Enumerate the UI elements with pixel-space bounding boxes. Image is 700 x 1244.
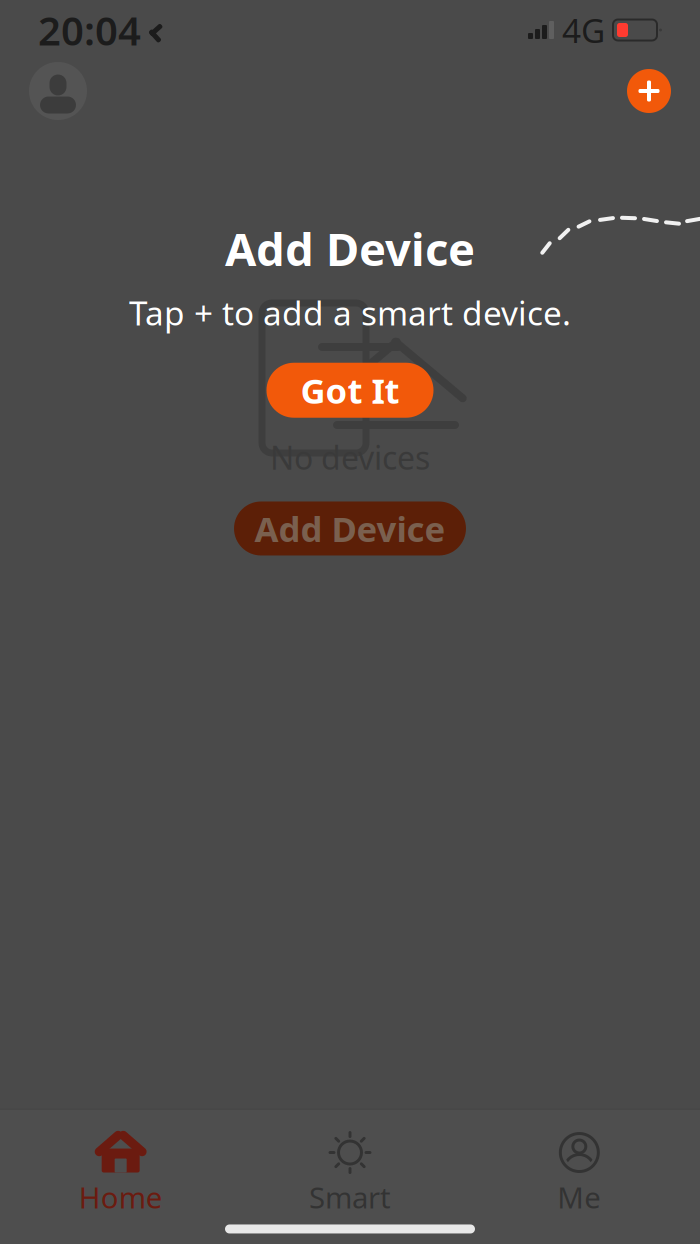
button[interactable]: Home: [6, 1123, 235, 1224]
button[interactable]: Add device: [627, 69, 671, 113]
staticText: Me: [557, 1177, 601, 1216]
staticText: Smart: [309, 1177, 391, 1216]
button[interactable]: Profile: [29, 62, 87, 120]
button[interactable]: Me: [465, 1123, 694, 1224]
button[interactable]: Smart: [235, 1123, 465, 1224]
staticText: 20:04: [38, 3, 141, 56]
staticText: Add Device: [225, 218, 475, 278]
staticText: Got It: [300, 367, 399, 413]
button[interactable]: Got It: [266, 363, 433, 418]
staticText: No devices: [270, 436, 430, 478]
staticText: 4G: [562, 8, 605, 52]
button[interactable]: Add Device: [234, 501, 466, 555]
staticText: Add Device: [254, 505, 445, 551]
staticText: Home: [79, 1177, 163, 1216]
staticText: Tap + to add a smart device.: [129, 290, 571, 335]
